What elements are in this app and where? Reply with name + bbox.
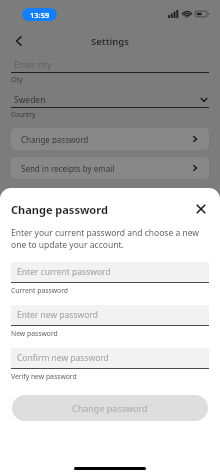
staticText: Change password [11, 202, 191, 217]
staticText: Enter city [14, 59, 52, 71]
button[interactable]: Confirm new password [11, 348, 209, 381]
staticText: Change password [21, 134, 191, 145]
staticText: Country [11, 110, 36, 119]
staticText: Settings [91, 35, 129, 48]
button[interactable]: Close [191, 199, 211, 219]
staticText: Current password [11, 286, 69, 295]
staticText: 13:59 [30, 10, 50, 20]
staticText: Enter your current password and choose a… [11, 227, 209, 251]
staticText: Send in receipts by email [21, 163, 191, 174]
staticText: New password [11, 329, 58, 338]
button[interactable]: Change password [12, 395, 208, 421]
staticText: Enter current password [17, 266, 111, 278]
staticText: Confirm new password [17, 352, 109, 364]
staticText: Sweden [14, 94, 200, 106]
button[interactable]: Enter current password [11, 262, 209, 295]
button[interactable]: Enter new password [11, 305, 209, 338]
staticText: Enter new password [17, 309, 98, 321]
staticText: Verify new password [11, 372, 77, 381]
staticText: Change password [72, 402, 148, 414]
button[interactable]: Change password [11, 128, 209, 150]
button[interactable]: Sweden [11, 92, 209, 119]
staticText: City [11, 75, 23, 84]
button[interactable]: Change password [0, 188, 220, 476]
button[interactable]: Send in receipts by email [11, 157, 209, 179]
button[interactable]: Back [9, 31, 29, 51]
